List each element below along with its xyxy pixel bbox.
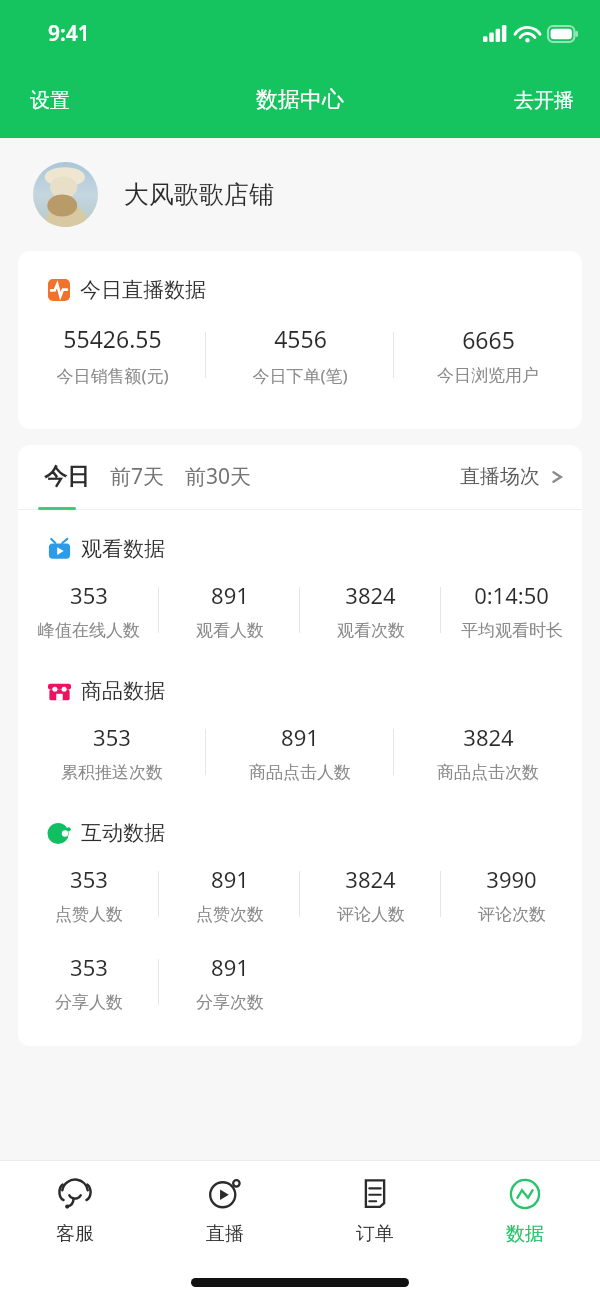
staticText: 商品点击人数 <box>249 762 351 783</box>
button[interactable]: Live <box>150 1160 300 1260</box>
staticText: 353 <box>70 580 108 610</box>
staticText: 订单 <box>356 1222 394 1246</box>
button[interactable]: Orders <box>300 1160 450 1260</box>
staticText: 客服 <box>56 1222 94 1246</box>
button[interactable]: Shop avatar <box>0 138 600 251</box>
staticText: 9:41 <box>48 19 90 48</box>
staticText: 今日 <box>44 462 90 491</box>
staticText: 商品数据 <box>81 678 165 704</box>
staticText: 353 <box>93 722 131 752</box>
staticText: 平均观看时长 <box>461 620 563 641</box>
staticText: 点赞人数 <box>55 904 123 925</box>
staticText: 直播场次 <box>460 464 540 489</box>
staticText: 353 <box>70 864 108 894</box>
button[interactable]: 设置 <box>0 74 100 127</box>
other: Live <box>206 1175 244 1213</box>
staticText: 今日销售额(元) <box>56 364 169 387</box>
staticText: 直播 <box>206 1222 244 1246</box>
staticText: 今日浏览用户 <box>437 365 539 386</box>
staticText: 商品点击次数 <box>437 762 539 783</box>
staticText: 数据 <box>506 1222 544 1246</box>
staticText: 3824 <box>345 864 396 894</box>
staticText: 前7天 <box>110 462 165 491</box>
staticText: 前30天 <box>185 462 252 491</box>
staticText: 891 <box>211 580 249 610</box>
staticText: 设置 <box>30 88 70 113</box>
button[interactable]: 今日 <box>34 452 100 501</box>
staticText: 累积推送次数 <box>61 762 163 783</box>
staticText: 891 <box>211 952 249 982</box>
staticText: 观看人数 <box>196 620 264 641</box>
staticText: 4556 <box>274 323 327 354</box>
other: Data <box>506 1175 544 1213</box>
staticText: 0:14:50 <box>474 580 549 610</box>
staticText: 分享次数 <box>196 992 264 1013</box>
staticText: 今日下单(笔) <box>252 364 348 387</box>
staticText: 观看次数 <box>337 620 405 641</box>
staticText: 观看数据 <box>81 536 165 562</box>
staticText: 3824 <box>345 580 396 610</box>
staticText: 353 <box>70 952 108 982</box>
button[interactable]: 直播场次 <box>442 454 582 499</box>
other: Shop avatar <box>33 162 98 227</box>
button[interactable]: Customer service <box>0 1160 150 1260</box>
staticText: 峰值在线人数 <box>38 620 140 641</box>
staticText: 今日直播数据 <box>80 277 206 303</box>
staticText: 6665 <box>462 324 515 355</box>
other: Orders <box>356 1175 394 1213</box>
staticText: 891 <box>281 722 319 752</box>
button[interactable]: 前30天 <box>175 452 262 501</box>
staticText: 去开播 <box>514 88 574 113</box>
other: Customer service <box>56 1175 94 1213</box>
button[interactable]: 去开播 <box>488 74 600 127</box>
button[interactable]: Data <box>450 1160 600 1260</box>
staticText: 大风歌歌店铺 <box>124 179 274 210</box>
button[interactable]: 前7天 <box>100 452 175 501</box>
staticText: 3824 <box>463 722 514 752</box>
staticText: 55426.55 <box>63 323 162 354</box>
staticText: 891 <box>211 864 249 894</box>
staticText: 数据中心 <box>256 86 344 114</box>
staticText: 点赞次数 <box>196 904 264 925</box>
staticText: 互动数据 <box>81 820 165 846</box>
staticText: 3990 <box>486 864 537 894</box>
staticText: 评论次数 <box>478 904 546 925</box>
staticText: 评论人数 <box>337 904 405 925</box>
staticText: 分享人数 <box>55 992 123 1013</box>
